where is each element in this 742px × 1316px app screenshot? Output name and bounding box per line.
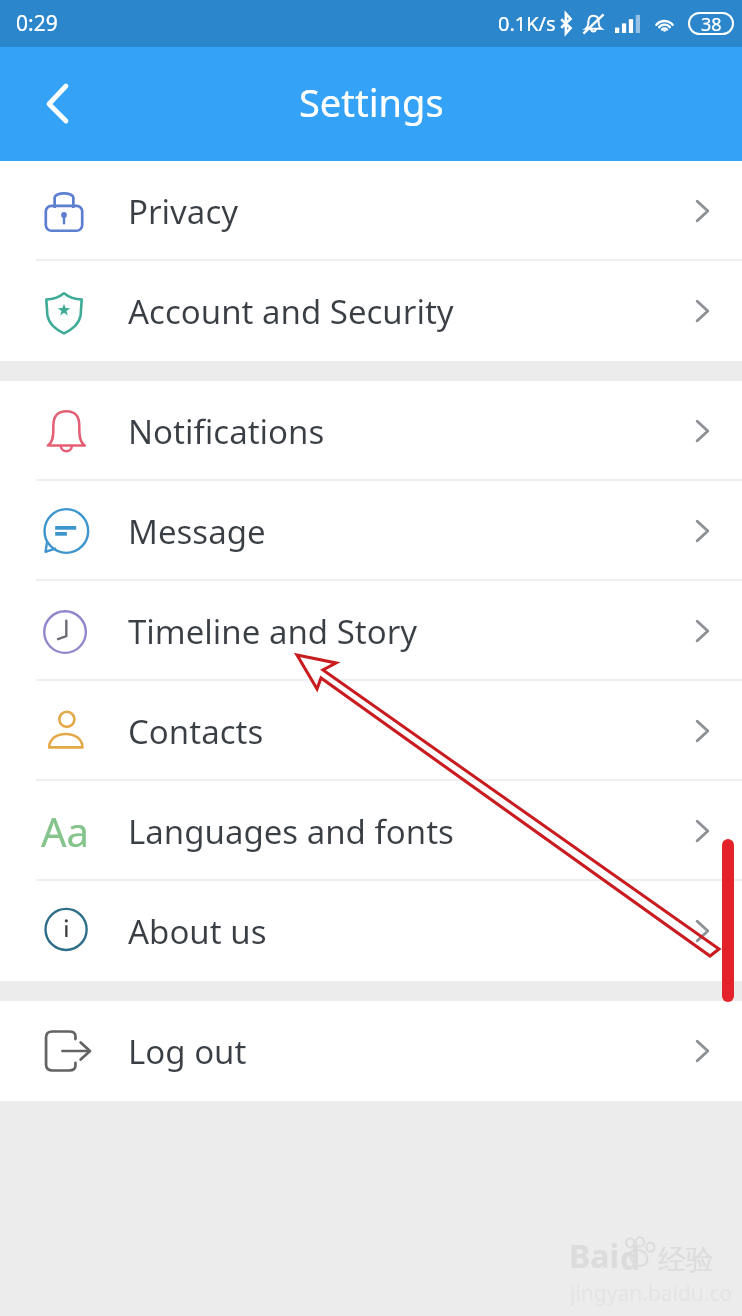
button[interactable]: Back [0,47,114,161]
staticText: 38 [701,12,722,35]
button[interactable]: Timeline and Story [0,581,742,681]
staticText: Log out [128,1029,247,1074]
staticText: 经验 [658,1242,714,1277]
staticText: 0:29 [16,9,58,38]
button[interactable]: Contacts [0,681,742,781]
staticText: du [620,1236,658,1278]
button[interactable]: Account and Security [0,261,742,361]
staticText: 0.1K/s [498,10,556,37]
staticText: Languages and fonts [128,809,454,854]
staticText: About us [128,909,267,954]
button[interactable]: Aa [0,781,742,881]
button[interactable]: About us [0,881,742,981]
staticText: Contacts [128,709,264,754]
button[interactable]: Notifications [0,381,742,481]
button[interactable]: Message [0,481,742,581]
staticText: Message [128,509,266,554]
button[interactable]: Privacy [0,161,742,261]
staticText: Notifications [128,409,325,454]
staticText: Privacy [128,189,239,234]
staticText: Aa [41,804,89,858]
staticText: Bai [569,1234,620,1278]
staticText: Settings [299,76,444,128]
button[interactable]: Log out [0,1001,742,1101]
staticText: Account and Security [128,289,454,334]
staticText: Timeline and Story [128,609,418,654]
